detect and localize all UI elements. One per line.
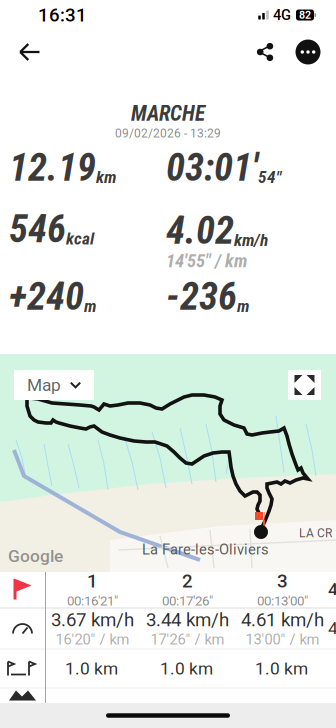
staticText: 4 [328, 618, 336, 639]
staticText: km/h [234, 230, 268, 250]
staticText: 13'00" / km [245, 631, 319, 648]
staticText: 1 [87, 570, 98, 592]
staticText: 16:31 [38, 4, 87, 26]
staticText: m [237, 296, 249, 316]
staticText: 3.44 km/h [146, 609, 229, 631]
staticText: 03:01' [166, 145, 258, 190]
staticText: 3.67 km/h [51, 609, 134, 631]
staticText: MARCHE [131, 101, 205, 126]
staticText: kcal [66, 228, 94, 249]
staticText: 4 [328, 579, 336, 600]
button[interactable]: Back [8, 30, 52, 74]
staticText: +240 [9, 274, 84, 319]
staticText: 1.0 km [160, 658, 213, 679]
staticText: 546 [9, 206, 66, 252]
staticText: 4.61 km/h [241, 609, 324, 631]
staticText: 82 [299, 9, 311, 21]
staticText: 12.19 [9, 145, 96, 190]
staticText: Map [27, 375, 61, 395]
staticText: 09/02/2026 - 13:29 [115, 126, 221, 141]
staticText: 54" [258, 167, 281, 187]
staticText: 3 [277, 570, 288, 592]
staticText: 1.0 km [255, 658, 308, 679]
staticText: 00:17'26" [162, 593, 213, 609]
staticText: LA CR [299, 526, 332, 540]
button[interactable]: More options [286, 30, 330, 74]
staticText: 17'26" / km [150, 631, 224, 648]
staticText: 16'20" / km [55, 631, 129, 648]
staticText: -236 [166, 274, 237, 319]
button[interactable]: Share [244, 30, 286, 74]
button[interactable]: Map [14, 370, 94, 400]
button[interactable]: Full screen map [288, 370, 321, 400]
staticText: Google [8, 546, 63, 566]
staticText: 4G [273, 6, 291, 24]
staticText: 2 [182, 570, 193, 592]
staticText: km [96, 167, 116, 187]
staticText: m [84, 296, 96, 316]
staticText: 00:16'21" [67, 593, 118, 609]
staticText: 4.02 [166, 208, 234, 253]
staticText: 1.0 km [65, 658, 118, 679]
staticText: 00:13'00" [257, 593, 308, 609]
staticText: 14'55" / km [166, 250, 247, 272]
staticText: La Fare-les-Oliviers [142, 541, 269, 558]
